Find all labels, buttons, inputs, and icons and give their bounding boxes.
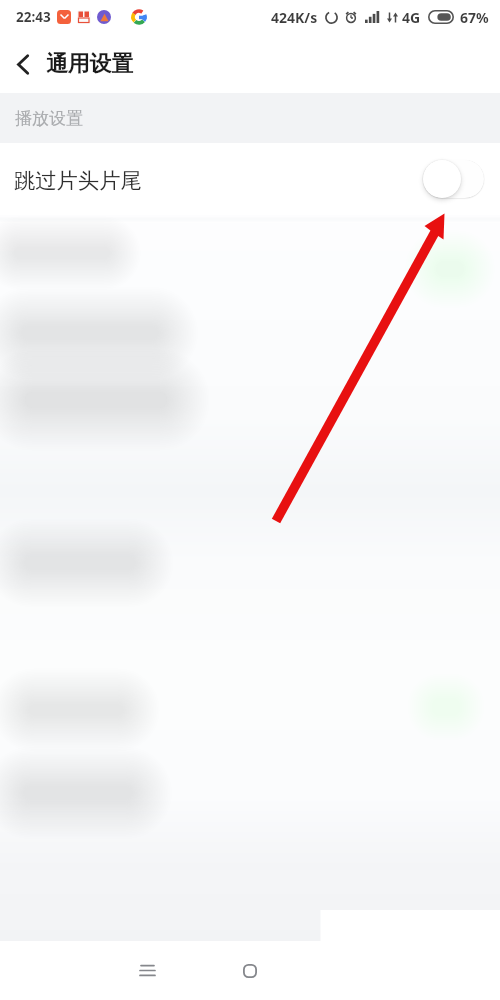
staticText: 67% bbox=[460, 8, 489, 27]
staticText: 4G bbox=[402, 8, 421, 27]
staticText: 播放设置 bbox=[15, 108, 83, 129]
button[interactable]: Menu bbox=[117, 941, 177, 1000]
button[interactable]: Back bbox=[0, 41, 46, 87]
button[interactable]: 跳过片头片尾 bbox=[0, 143, 500, 215]
staticText: 跳过片头片尾 bbox=[14, 167, 142, 194]
staticText: 通用设置 bbox=[46, 50, 134, 77]
staticText: 424K/s bbox=[271, 8, 318, 27]
button[interactable]: Home bbox=[220, 941, 280, 1000]
staticText: 22:43 bbox=[16, 8, 51, 26]
